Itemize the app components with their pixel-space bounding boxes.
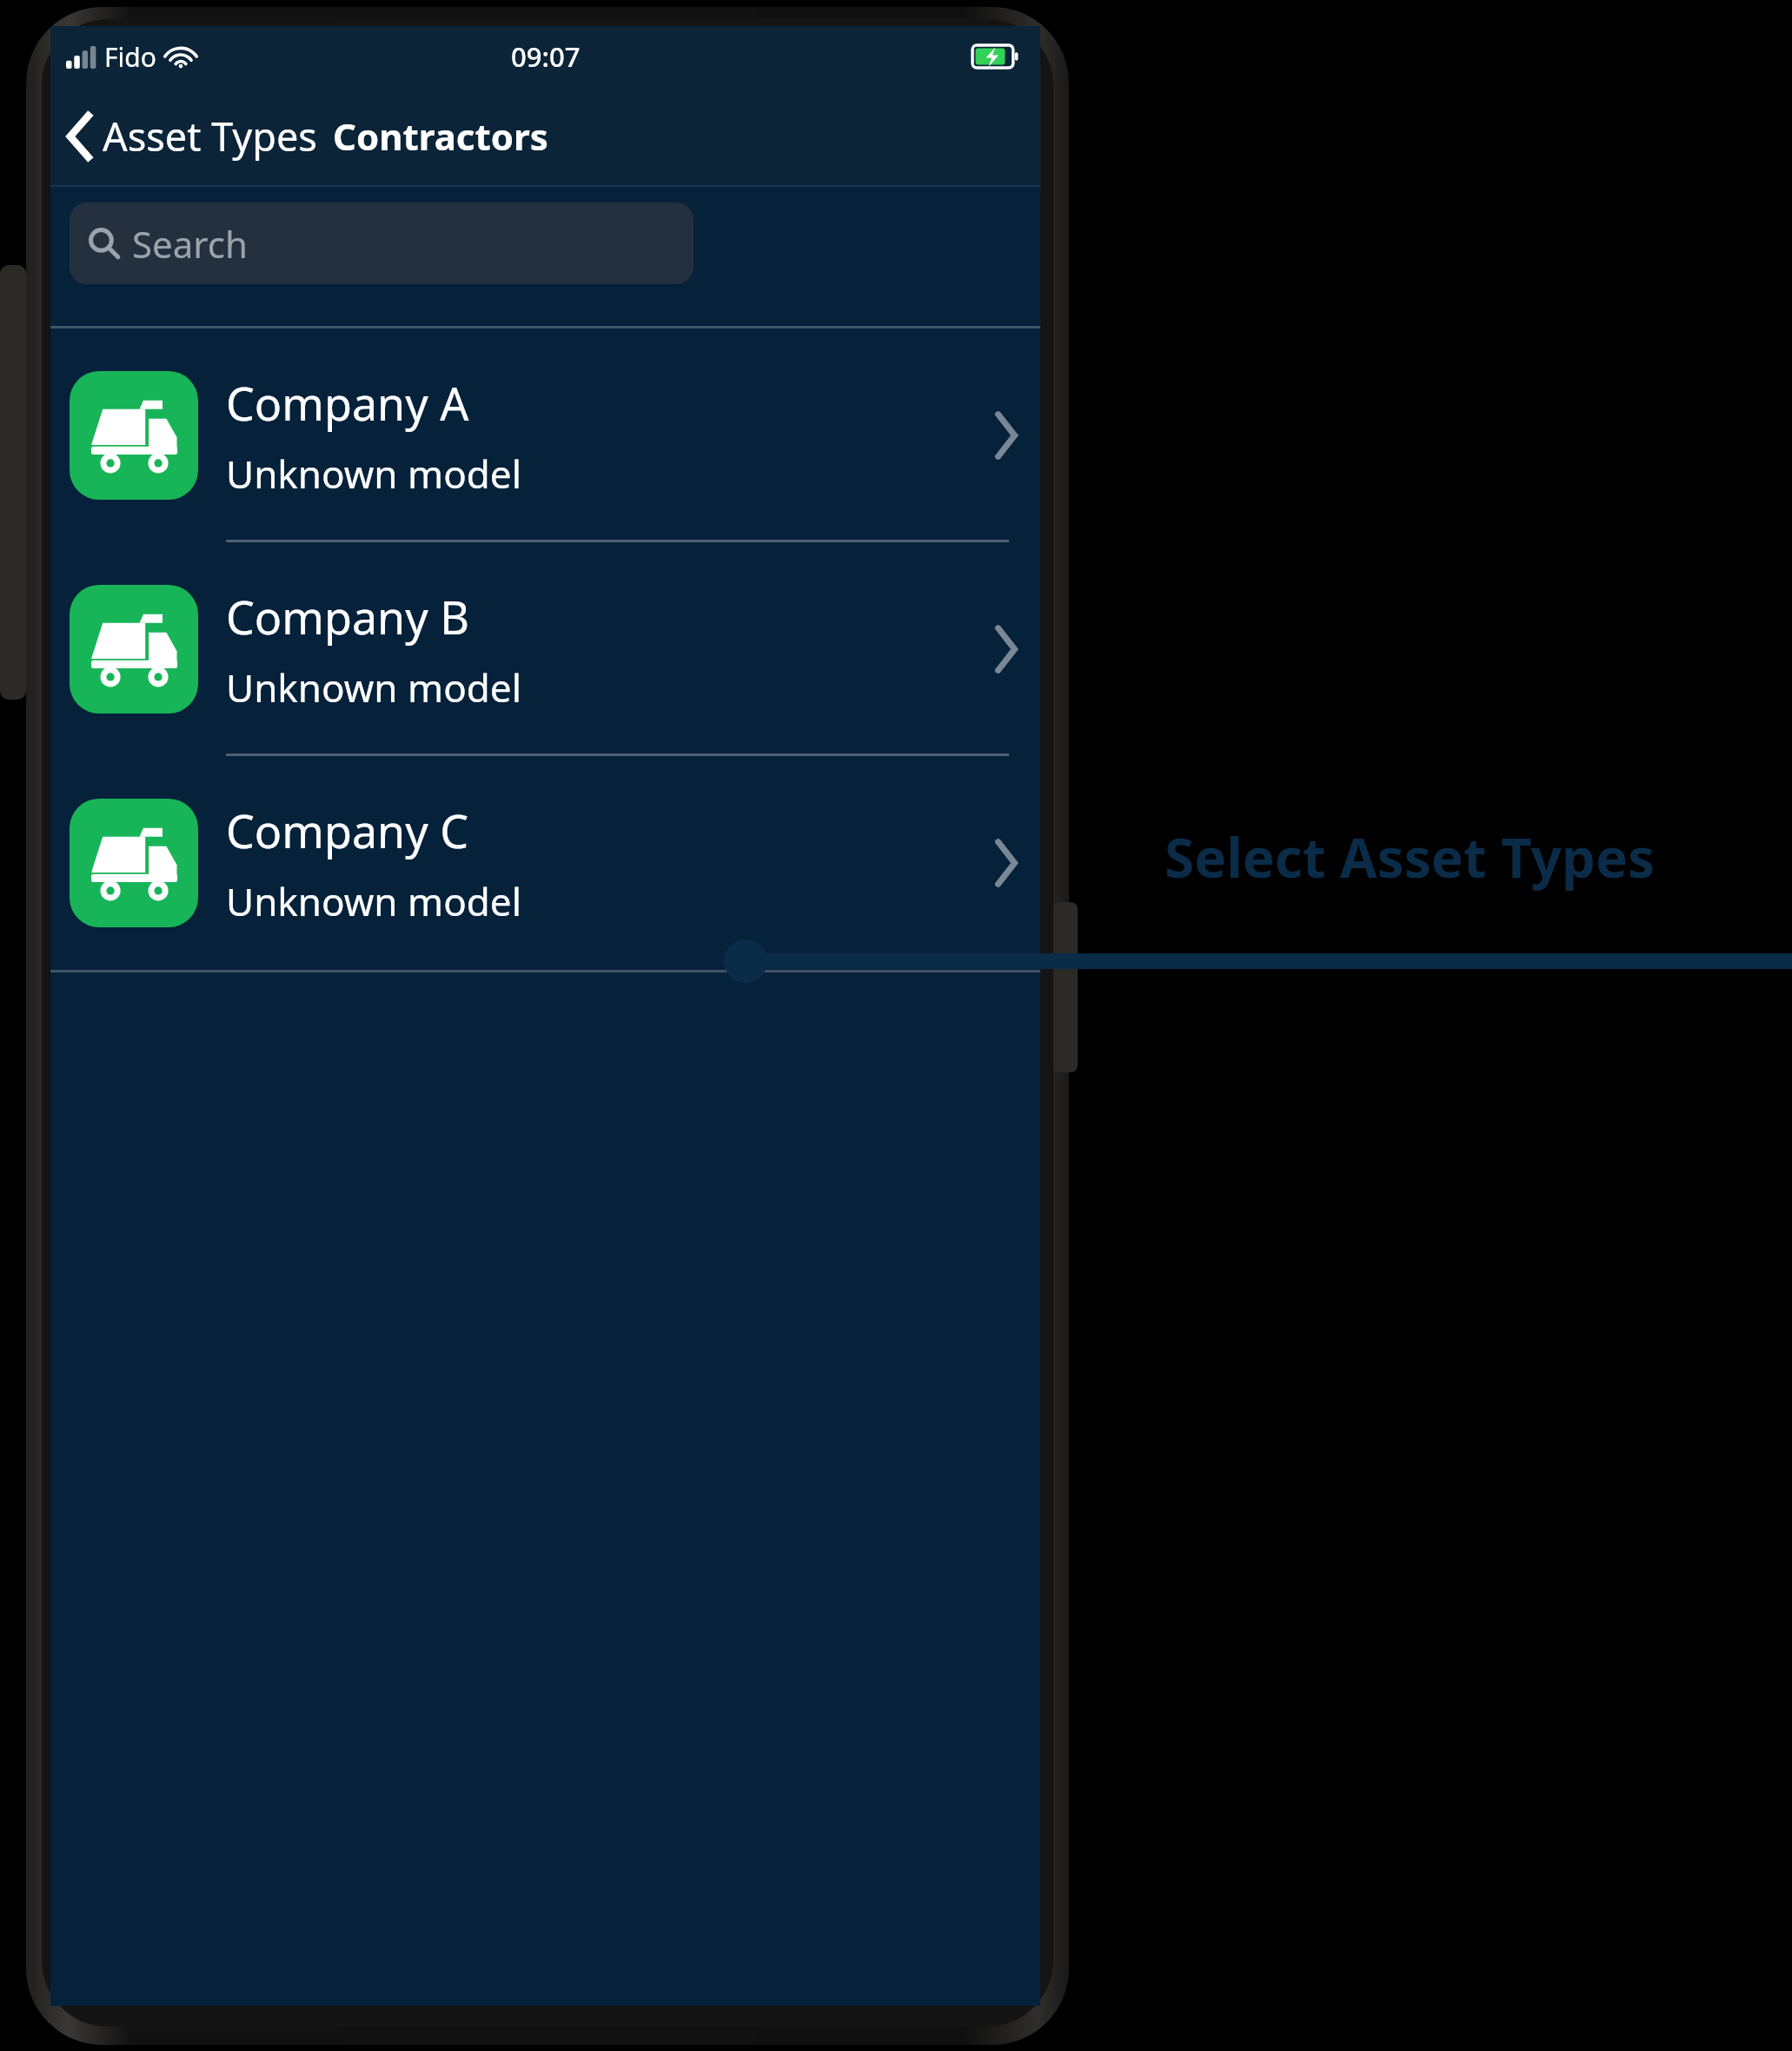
staticText: Company C	[226, 800, 469, 861]
staticText: Unknown model	[226, 448, 521, 500]
staticText: Contractors	[333, 111, 548, 161]
staticText: Unknown model	[226, 875, 521, 927]
staticText: Fido	[104, 39, 156, 75]
staticText: 09:07	[511, 38, 581, 75]
button[interactable]: Company C	[50, 756, 1040, 970]
staticText: Company B	[226, 586, 470, 647]
staticText: Unknown model	[226, 661, 521, 714]
other: Back	[63, 113, 97, 160]
staticText: Search	[132, 219, 248, 269]
button[interactable]: Company B	[50, 542, 1040, 756]
button[interactable]: Search	[70, 202, 694, 284]
staticText: Company A	[226, 372, 469, 434]
staticText: Asset Types	[103, 110, 317, 163]
button[interactable]: Back	[63, 110, 317, 163]
staticText: Select Asset Types	[1165, 820, 1773, 893]
button[interactable]: Company A	[50, 329, 1040, 542]
